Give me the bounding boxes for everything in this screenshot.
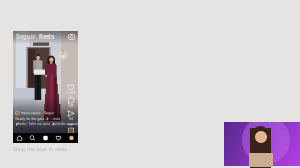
button[interactable]: Share [67,110,74,121]
staticText: 5,482 [66,91,75,94]
staticText: Seguir [16,33,35,40]
staticText: Ready for the gala ✨ …más [15,117,60,121]
staticText: 94 [69,117,73,121]
staticText: Take our quiz [28,122,50,126]
button[interactable]: Home [17,135,22,140]
button[interactable]: Search [30,135,35,141]
staticText: Audio [18,122,27,126]
button[interactable]: Seguir [16,33,35,40]
button[interactable]: More options [68,123,74,125]
button[interactable]: Comment [68,97,74,108]
staticText: Shop the look in reels [13,146,67,152]
staticText: maria.styles · Seguir [21,111,54,115]
staticText: Reels [39,33,54,40]
button[interactable]: Activity [56,135,61,140]
button[interactable]: Like [66,84,75,94]
button[interactable]: Reels [43,135,48,140]
button[interactable]: Camera [68,33,74,39]
button[interactable]: Profile [69,136,74,140]
button[interactable]: Reels [39,33,54,40]
button[interactable]: maria.styles · Seguir [15,111,54,115]
button[interactable]: Audio track [68,128,74,134]
staticText: 218 [68,104,73,108]
staticText: sonido original [54,122,78,126]
